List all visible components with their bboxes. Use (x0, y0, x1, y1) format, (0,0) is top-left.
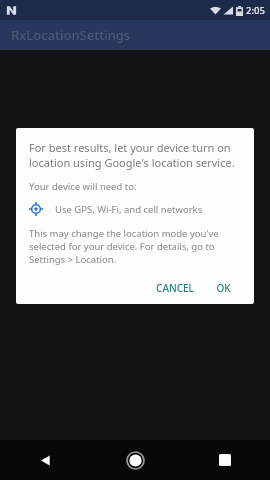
button[interactable]: OK (210, 276, 237, 300)
button[interactable]: Back (0, 440, 90, 480)
staticText: Your device will need to: (29, 180, 137, 193)
staticText: This may change the location mode you've… (29, 227, 241, 266)
button[interactable]: Home (90, 440, 180, 480)
button[interactable]: Recent apps (180, 440, 270, 480)
other: Location (29, 202, 43, 216)
button[interactable]: CANCEL (150, 276, 200, 300)
staticText: Use GPS, Wi-Fi, and cell networks (55, 203, 203, 216)
staticText: CANCEL (156, 281, 194, 295)
staticText: 2:05 (246, 4, 265, 17)
staticText: RxLocationSettings (11, 26, 131, 44)
staticText: For best results, let your device turn o… (29, 140, 241, 170)
staticText: OK (216, 281, 231, 295)
